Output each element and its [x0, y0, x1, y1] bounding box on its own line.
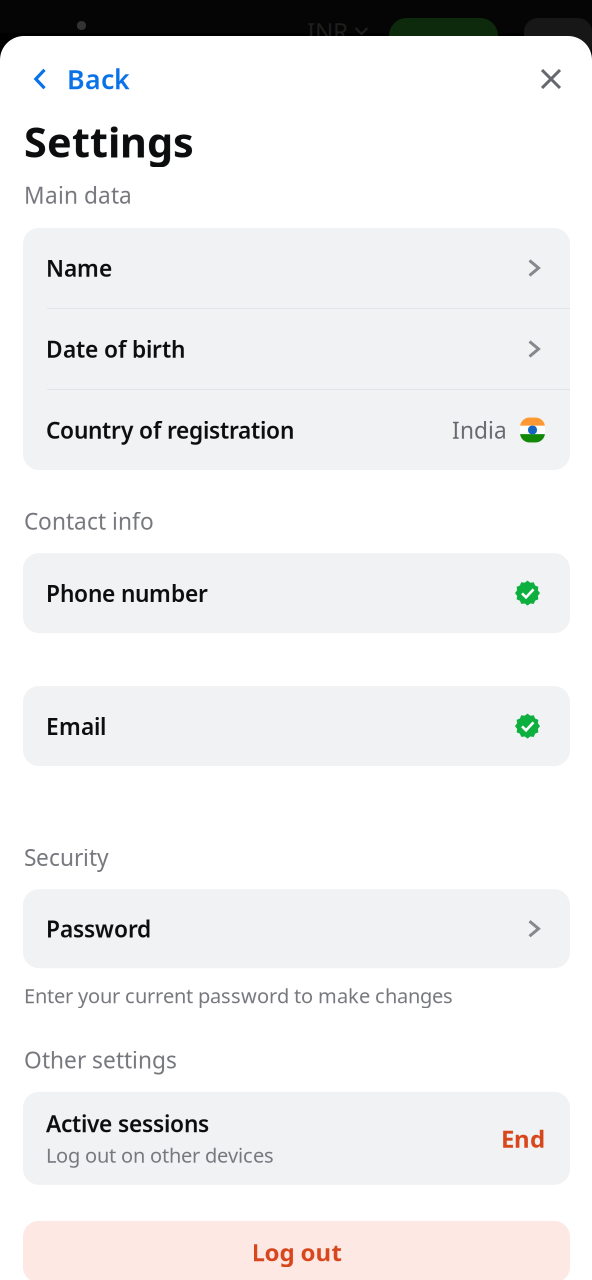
button[interactable]: Country of registration [23, 390, 570, 470]
staticText: Phone number [46, 578, 208, 608]
staticText: Active sessions [46, 1108, 209, 1139]
staticText: INR [307, 15, 348, 47]
button[interactable]: Back [0, 50, 150, 108]
button[interactable]: Phone number [0, 553, 592, 633]
staticText: Contact info [24, 506, 154, 536]
button[interactable]: Close [516, 50, 592, 108]
button[interactable]: Date of birth [23, 309, 570, 389]
staticText: Email [46, 711, 106, 741]
staticText: Log out [251, 1236, 341, 1268]
button[interactable]: Log out [0, 1221, 592, 1280]
staticText: Settings [24, 114, 194, 169]
button[interactable]: Name [23, 228, 570, 308]
staticText: Security [24, 842, 109, 872]
staticText: Back [67, 61, 130, 97]
staticText: Country of registration [46, 415, 294, 445]
staticText: End [501, 1122, 545, 1154]
staticText: Date of birth [46, 334, 185, 364]
staticText: India [452, 415, 507, 445]
staticText: Password [46, 914, 151, 944]
staticText: Main data [24, 180, 132, 210]
button[interactable]: Password [0, 889, 592, 968]
button[interactable]: Email [0, 686, 592, 766]
button[interactable]: Active sessions [0, 1092, 592, 1185]
staticText: Name [46, 253, 112, 283]
staticText: Log out on other devices [46, 1142, 274, 1168]
staticText: Enter your current password to make chan… [24, 982, 453, 1009]
staticText: Other settings [24, 1045, 177, 1075]
